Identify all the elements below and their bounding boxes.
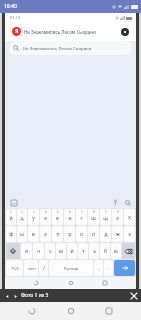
button[interactable]: 1 [6,209,16,225]
button[interactable]: . [104,260,113,276]
staticText: д [104,231,108,238]
staticText: 4 [45,210,47,214]
staticText: . [108,265,110,272]
button[interactable]: Русский [49,260,93,276]
button[interactable]: Предыдущее фото [3,292,11,300]
staticText: Не Знакомилось Лесом Сызрани [23,45,92,51]
button[interactable]: Главный экран [64,304,78,318]
staticText: ы [20,231,24,238]
staticText: 3 [33,210,35,214]
staticText: ф [9,231,13,238]
staticText: о [80,231,83,238]
staticText: 01:13 [10,15,21,20]
staticText: н [68,215,72,222]
staticText: в [32,231,35,238]
staticText: 8 [93,210,95,214]
button[interactable]: в [28,226,39,242]
button[interactable]: х [124,209,135,225]
staticText: э [128,231,131,238]
staticText: 5 [57,210,59,214]
button[interactable]: а [40,226,51,242]
button[interactable]: р [64,226,75,242]
staticText: к [44,215,47,222]
staticText: 1 [10,210,12,214]
staticText: 2 [21,210,23,214]
button[interactable]: Очистить [121,28,129,36]
staticText: с [49,248,52,255]
button[interactable]: Обзор [101,279,109,287]
button[interactable]: л [88,226,99,242]
button[interactable]: Клавиатура [10,199,17,206]
button[interactable]: п [52,226,63,242]
button[interactable]: Я [9,24,132,39]
button[interactable]: ?123 [6,260,23,276]
button[interactable]: ф [6,226,16,242]
button[interactable]: б [100,243,110,259]
button[interactable]: ы [17,226,27,242]
button[interactable]: Следующее фото [11,292,19,300]
staticText: р [68,231,72,238]
button[interactable]: и [67,243,77,259]
button[interactable]: Shift [6,243,20,259]
button[interactable]: ж [112,226,123,242]
button[interactable]: Не Знакомилось Лесом Сызрани [9,41,132,55]
button[interactable]: э [124,226,135,242]
button[interactable]: 7 [76,209,87,225]
staticText: й [9,215,13,222]
button[interactable]: 0 [112,209,123,225]
button[interactable]: д [100,226,111,242]
button[interactable]: 3 [28,209,39,225]
button[interactable]: 4 [40,209,51,225]
staticText: п [56,231,60,238]
staticText: Русский [64,266,78,271]
button[interactable]: ь [89,243,99,259]
staticText: 7 [81,210,83,214]
staticText: ж [116,231,120,238]
button[interactable]: 9 [100,209,111,225]
staticText: б [104,248,107,255]
button[interactable]: / [39,260,48,276]
button[interactable]: с [45,243,55,259]
staticText: м [59,248,63,255]
button[interactable]: т [78,243,88,259]
staticText: 0 [117,210,119,214]
staticText: .com [27,266,36,271]
button[interactable]: Назад [32,279,40,287]
button[interactable]: м [56,243,66,259]
staticText: з [116,215,119,222]
button[interactable]: .com [24,260,38,276]
staticText: е [56,215,59,222]
button[interactable]: 5 [52,209,63,225]
staticText: ц [20,215,24,222]
staticText: щ [103,215,108,222]
staticText: 16:40 [4,3,17,10]
staticText: х [128,214,131,221]
staticText: 9 [105,210,107,214]
button[interactable]: о [76,226,87,242]
staticText: ?123 [11,266,19,271]
button[interactable]: я [21,243,32,259]
button[interactable]: Поиск [124,199,131,206]
staticText: л [92,231,95,238]
button[interactable]: Закрыть [129,291,138,300]
button[interactable]: 6 [64,209,75,225]
button[interactable]: Последние приложения [102,304,116,318]
button[interactable]: Главная [67,279,75,287]
staticText: я [25,248,28,255]
button[interactable]: ю [111,243,121,259]
staticText: ь [93,248,96,255]
staticText: / [43,265,45,272]
button[interactable]: Поиск [114,260,135,276]
button[interactable]: Удалить [122,243,135,259]
staticText: у [32,215,35,222]
button[interactable]: 2 [17,209,27,225]
button[interactable]: Назад [25,304,39,318]
staticText: т [82,248,85,255]
button[interactable]: , [94,260,103,276]
staticText: 6 [69,210,71,214]
staticText: г [80,215,83,222]
button[interactable]: Голосовой ввод [112,199,119,206]
staticText: ч [37,248,40,255]
button[interactable]: 8 [88,209,99,225]
button[interactable]: ч [33,243,44,259]
